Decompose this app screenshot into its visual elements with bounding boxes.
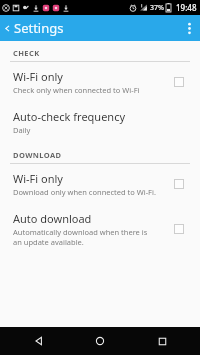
- button[interactable]: Back: [16, 327, 62, 355]
- button[interactable]: Home: [77, 327, 123, 355]
- staticText: Settings: [14, 19, 64, 37]
- staticText: Download only when connected to Wi-Fi.: [13, 187, 156, 197]
- staticText: Daily: [13, 125, 31, 135]
- staticText: Auto-check frequency: [13, 109, 126, 124]
- staticText: Check only when connected to Wi-Fi: [13, 85, 140, 95]
- staticText: 19:48: [176, 2, 197, 13]
- staticText: DOWNLOAD: [13, 150, 62, 160]
- staticText: Wi-Fi only: [13, 69, 63, 84]
- button[interactable]: Navigate up: [0, 15, 14, 41]
- staticText: Automatically download when there is an …: [13, 227, 148, 247]
- staticText: CHECK: [13, 48, 40, 58]
- button[interactable]: Auto download checkbox: [168, 218, 190, 240]
- staticText: 37%: [150, 3, 164, 13]
- button[interactable]: Wi-Fi only checkbox: [168, 71, 190, 93]
- button[interactable]: Recent apps: [139, 327, 185, 355]
- staticText: Wi-Fi only: [13, 171, 63, 186]
- button[interactable]: Wi-Fi only: [0, 62, 200, 102]
- button[interactable]: More options: [178, 15, 200, 41]
- button[interactable]: Wi-Fi only: [0, 164, 200, 204]
- staticText: Auto download: [13, 211, 92, 226]
- button[interactable]: Auto-check frequency: [0, 102, 200, 142]
- button[interactable]: Auto download: [0, 204, 200, 254]
- button[interactable]: Wi-Fi only checkbox: [168, 173, 190, 195]
